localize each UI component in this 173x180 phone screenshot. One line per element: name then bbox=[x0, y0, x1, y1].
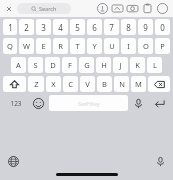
button[interactable]: 8 bbox=[121, 19, 136, 35]
button[interactable]: H bbox=[96, 57, 111, 73]
button[interactable]: Dictation bbox=[152, 153, 168, 169]
button[interactable]: 1 bbox=[3, 19, 17, 35]
button[interactable]: Return bbox=[149, 95, 170, 111]
button[interactable]: Q bbox=[3, 38, 17, 54]
button[interactable]: C bbox=[63, 76, 78, 92]
button[interactable]: D bbox=[45, 57, 60, 73]
button[interactable]: O bbox=[138, 38, 153, 54]
staticText: V bbox=[85, 79, 90, 89]
button[interactable]: X bbox=[46, 76, 61, 92]
staticText: Z bbox=[34, 79, 39, 89]
button[interactable]: 0 bbox=[155, 19, 170, 35]
button[interactable]: J bbox=[113, 57, 128, 73]
staticText: 1 bbox=[8, 22, 13, 33]
staticText: P bbox=[160, 41, 165, 51]
staticText: 4 bbox=[58, 22, 63, 33]
staticText: M bbox=[135, 79, 142, 89]
button[interactable]: K bbox=[130, 57, 145, 73]
button[interactable]: Z bbox=[28, 76, 44, 92]
staticText: F bbox=[68, 60, 72, 70]
button[interactable]: More bbox=[155, 1, 170, 16]
staticText: N bbox=[119, 79, 125, 89]
button[interactable]: 4 bbox=[53, 19, 68, 35]
staticText: K bbox=[135, 60, 140, 70]
button[interactable]: Close bbox=[3, 3, 14, 14]
staticText: Q bbox=[7, 41, 13, 51]
button[interactable]: Camera bbox=[125, 1, 140, 16]
button[interactable]: Y bbox=[87, 38, 102, 54]
staticText: G bbox=[84, 60, 90, 70]
button[interactable]: Stickers bbox=[95, 1, 110, 16]
staticText: Search bbox=[39, 5, 57, 12]
button[interactable]: U bbox=[104, 38, 119, 54]
button[interactable]: L bbox=[147, 57, 162, 73]
button[interactable]: GIF bbox=[110, 1, 125, 16]
button[interactable]: I bbox=[121, 38, 136, 54]
button[interactable]: 7 bbox=[104, 19, 119, 35]
button[interactable]: Change language bbox=[5, 153, 21, 169]
staticText: E bbox=[41, 41, 46, 51]
staticText: 0 bbox=[160, 22, 165, 33]
staticText: I bbox=[127, 41, 130, 51]
staticText: 6 bbox=[92, 22, 97, 33]
button[interactable]: 2 bbox=[19, 19, 34, 35]
button[interactable]: 5 bbox=[70, 19, 85, 35]
button[interactable]: Voice input bbox=[130, 95, 147, 111]
button[interactable]: T bbox=[70, 38, 85, 54]
button[interactable]: Backspace bbox=[148, 76, 170, 92]
button[interactable]: SwiftKey bbox=[49, 95, 128, 111]
button[interactable]: 3 bbox=[36, 19, 51, 35]
button[interactable]: 123 bbox=[3, 95, 28, 111]
button[interactable]: V bbox=[80, 76, 95, 92]
button[interactable]: E bbox=[36, 38, 51, 54]
staticText: C bbox=[68, 79, 73, 89]
staticText: B bbox=[102, 79, 107, 89]
staticText: O bbox=[143, 41, 149, 51]
button[interactable]: W bbox=[19, 38, 34, 54]
staticText: W bbox=[23, 41, 30, 51]
staticText: R bbox=[58, 41, 63, 51]
staticText: SwiftKey bbox=[78, 100, 100, 107]
staticText: H bbox=[101, 60, 107, 70]
staticText: D bbox=[50, 60, 56, 70]
button[interactable]: 9 bbox=[138, 19, 153, 35]
staticText: S bbox=[33, 60, 38, 70]
button[interactable]: M bbox=[131, 76, 146, 92]
staticText: Y bbox=[92, 41, 97, 51]
staticText: T bbox=[75, 41, 80, 51]
button[interactable]: A bbox=[11, 57, 26, 73]
button[interactable]: Search bbox=[17, 3, 71, 14]
button[interactable]: N bbox=[114, 76, 129, 92]
staticText: 5 bbox=[75, 22, 80, 33]
button[interactable]: R bbox=[53, 38, 68, 54]
staticText: 3 bbox=[41, 22, 46, 33]
button[interactable]: G bbox=[79, 57, 94, 73]
staticText: 123 bbox=[10, 99, 22, 108]
staticText: J bbox=[119, 60, 122, 70]
staticText: 9 bbox=[143, 22, 148, 33]
staticText: L bbox=[153, 60, 157, 70]
button[interactable]: Shift bbox=[3, 76, 26, 92]
button[interactable]: S bbox=[28, 57, 43, 73]
staticText: X bbox=[51, 79, 56, 89]
staticText: A bbox=[16, 60, 21, 70]
button[interactable]: Emoji bbox=[30, 95, 47, 111]
button[interactable]: F bbox=[62, 57, 77, 73]
button[interactable]: 6 bbox=[87, 19, 102, 35]
button[interactable]: Clipboard bbox=[140, 1, 155, 16]
staticText: 2 bbox=[24, 22, 29, 33]
staticText: 8 bbox=[126, 22, 131, 33]
button[interactable]: B bbox=[97, 76, 112, 92]
staticText: U bbox=[109, 41, 115, 51]
button[interactable]: P bbox=[155, 38, 170, 54]
staticText: 7 bbox=[109, 22, 114, 33]
